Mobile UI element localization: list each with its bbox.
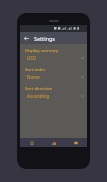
button[interactable]: Accounts [20, 138, 43, 147]
button[interactable]: Wallet [65, 138, 87, 147]
staticText: Sort direction [25, 85, 53, 91]
button[interactable]: Display currency [20, 44, 87, 63]
button[interactable]: Back [22, 34, 31, 43]
staticText: Settings [34, 35, 55, 42]
staticText: Ascending [27, 93, 50, 99]
button[interactable]: Sort direction [20, 82, 87, 101]
button[interactable]: Chart [43, 138, 65, 147]
staticText: Display currency [25, 47, 59, 53]
button[interactable]: Sort order [20, 63, 87, 82]
staticText: Name [27, 74, 40, 80]
staticText: Sort order [25, 66, 46, 72]
staticText: USD [27, 55, 37, 61]
